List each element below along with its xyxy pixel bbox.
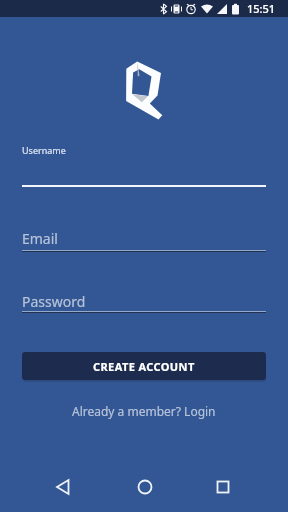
staticText: Username [22, 144, 66, 156]
staticText: CREATE ACCOUNT [93, 359, 195, 374]
button[interactable]: Already a member? Login [72, 403, 216, 419]
button[interactable]: Password [22, 288, 266, 316]
button[interactable]: CREATE ACCOUNT [22, 352, 266, 380]
staticText: Password [22, 292, 86, 311]
staticText: 15:51 [247, 1, 276, 16]
button[interactable]: Email [22, 226, 266, 254]
staticText: Email [22, 229, 58, 248]
button[interactable] [50, 474, 76, 500]
button[interactable] [210, 474, 236, 500]
button[interactable] [132, 474, 158, 500]
